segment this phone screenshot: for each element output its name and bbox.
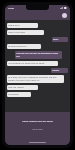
button[interactable]: I guess. [51, 68, 68, 73]
staticText: 12:47 [8, 7, 14, 10]
staticText: What makes you say that? [22, 119, 53, 122]
staticText: [In a way] Why can't I remember anything… [8, 76, 63, 82]
button[interactable]: You're typing in a phone into my head? [7, 61, 58, 66]
staticText: You're typing in a phone into my head? [8, 62, 45, 65]
staticText: I feel like that this app. I'd supposed … [16, 52, 61, 58]
staticText: I guess. [52, 69, 60, 72]
staticText: So what's going on? [8, 45, 27, 48]
button[interactable]: What makes you say that? [5, 112, 70, 145]
button[interactable]: I feel like that this app. I'd supposed … [15, 51, 62, 59]
staticText: What is this place? [8, 31, 26, 34]
staticText: Tap to reply [32, 128, 43, 131]
button[interactable]: [In a way] Why can't I remember anything… [7, 75, 64, 83]
staticText: Relax. [53, 38, 59, 41]
button[interactable]: Wait. am I dead? [7, 85, 38, 90]
button[interactable]: So what's going on? [7, 44, 41, 49]
staticText: Is this bad? [8, 93, 19, 96]
button[interactable]: Profile [62, 13, 67, 18]
button[interactable]: What is this place? [7, 30, 44, 35]
button[interactable]: Relax. [52, 37, 68, 42]
button[interactable]: Is this bad? [7, 92, 31, 97]
staticText: Where am I? [8, 24, 20, 27]
staticText: Wait. am I dead? [8, 86, 24, 89]
button[interactable]: Where am I? [7, 23, 38, 28]
